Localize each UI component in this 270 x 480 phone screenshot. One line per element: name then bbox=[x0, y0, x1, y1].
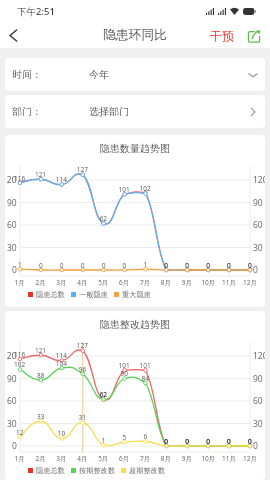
button[interactable]: 时间： bbox=[5, 58, 265, 91]
staticText: 隐患总数 bbox=[36, 466, 65, 475]
button[interactable]: 返回 bbox=[0, 22, 26, 48]
staticText: 隐患整改趋势图 bbox=[5, 318, 265, 331]
staticText: 隐患总数 bbox=[36, 290, 65, 299]
staticText: 按期整改数 bbox=[79, 466, 115, 475]
button[interactable]: 干预 bbox=[209, 28, 235, 43]
staticText: 部门： bbox=[12, 105, 42, 118]
staticText: 选择部门 bbox=[89, 105, 129, 118]
staticText: 超期整改数 bbox=[129, 466, 165, 475]
staticText: 今年 bbox=[89, 68, 109, 81]
button[interactable]: 分享 bbox=[245, 27, 262, 44]
staticText: 隐患环同比 bbox=[103, 27, 167, 43]
staticText: 一般隐患 bbox=[79, 290, 108, 299]
staticText: 重大隐患 bbox=[122, 290, 151, 299]
staticText: 下午2:51 bbox=[17, 5, 55, 18]
staticText: 时间： bbox=[12, 68, 42, 81]
button[interactable]: 部门： bbox=[5, 95, 265, 128]
staticText: 隐患数量趋势图 bbox=[5, 142, 265, 155]
staticText: 干预 bbox=[210, 28, 234, 43]
